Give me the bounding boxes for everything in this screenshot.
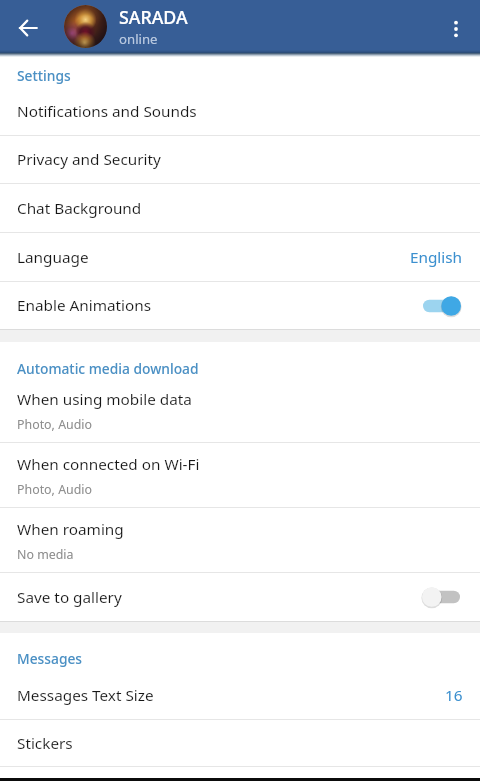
button[interactable]: Messages Text Size	[0, 671, 480, 719]
staticText: Notifications and Sounds	[17, 101, 197, 122]
staticText: When connected on Wi-Fi	[17, 454, 200, 475]
staticText: Language	[17, 247, 89, 268]
button[interactable]: Enable Animations	[0, 282, 480, 329]
staticText: Chat Background	[17, 198, 142, 219]
button[interactable]: Chat Background	[0, 184, 480, 232]
staticText: No media	[17, 546, 74, 563]
staticText: Messages	[17, 649, 83, 668]
button[interactable]: Privacy and Security	[0, 136, 480, 183]
staticText: online	[119, 30, 158, 48]
staticText: 16	[445, 685, 463, 706]
staticText: SARADA	[119, 5, 188, 29]
staticText: Photo, Audio	[17, 481, 93, 498]
button[interactable]: Language	[0, 233, 480, 281]
staticText: Messages Text Size	[17, 685, 154, 706]
button[interactable]: Back	[5, 5, 51, 51]
button[interactable]: When connected on Wi-Fi	[0, 443, 480, 507]
staticText: Automatic media download	[17, 359, 199, 378]
button[interactable]: When using mobile data	[0, 377, 480, 442]
button[interactable]: Notifications and Sounds	[0, 87, 480, 135]
staticText: Save to gallery	[17, 587, 122, 608]
staticText: Privacy and Security	[17, 149, 161, 170]
staticText: Settings	[17, 66, 71, 85]
button[interactable]: More options	[434, 7, 478, 51]
button[interactable]: When roaming	[0, 508, 480, 572]
button[interactable]: SARADA	[56, 0, 416, 53]
staticText: Photo, Audio	[17, 416, 93, 433]
button[interactable]: Stickers	[0, 720, 480, 766]
button[interactable]: Save to gallery	[0, 573, 480, 621]
staticText: When roaming	[17, 519, 124, 540]
staticText: When using mobile data	[17, 389, 192, 410]
staticText: Enable Animations	[17, 295, 152, 316]
staticText: Stickers	[17, 733, 73, 754]
staticText: English	[410, 247, 463, 268]
